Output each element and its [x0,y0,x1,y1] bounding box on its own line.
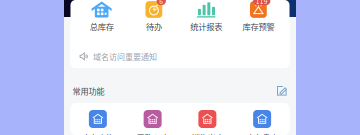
button[interactable]: 统计报表 [186,1,226,30]
button[interactable]: 库存盘点 [235,110,290,135]
staticText: 采购入库 [137,131,169,135]
staticText: 库存盘点 [246,131,278,135]
button[interactable]: 库存查询 [70,110,125,135]
staticText: 统计报表 [190,20,222,32]
button[interactable]: 119 [238,1,278,30]
button[interactable]: 销售出库 [180,110,235,135]
staticText: 域名访问重要通知 [93,51,157,62]
button[interactable]: 采购入库 [125,110,180,135]
staticText: 119 [256,0,268,6]
staticText: 销售出库 [191,131,223,135]
button[interactable]: 6 [134,1,174,30]
staticText: 总库存 [90,20,114,32]
button[interactable]: 总库存 [82,1,122,30]
button[interactable]: 域名访问重要通知 [70,48,289,64]
staticText: 库存预警 [242,20,274,32]
staticText: 常用功能 [72,85,104,97]
staticText: 6 [159,0,163,6]
button[interactable]: Edit shortcuts [276,85,287,96]
staticText: 库存查询 [82,131,114,135]
staticText: 待办 [146,20,162,32]
